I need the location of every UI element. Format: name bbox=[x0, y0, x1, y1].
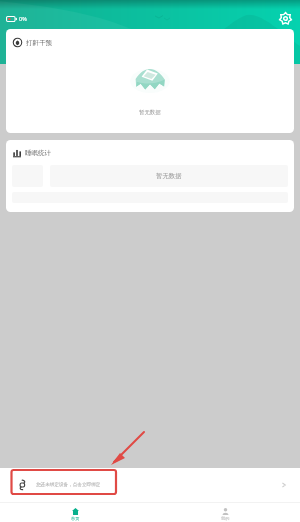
staticText: 暂无数据 bbox=[156, 172, 182, 180]
staticText: 睡眠统计 bbox=[25, 149, 51, 157]
button[interactable]: 您还未绑定设备，点击立即绑定 bbox=[0, 468, 300, 502]
staticText: 打鼾干预 bbox=[26, 39, 52, 47]
button[interactable]: 打鼾干预 bbox=[6, 29, 294, 133]
button[interactable]: Settings bbox=[277, 10, 293, 26]
button[interactable]: 睡眠统计 bbox=[6, 140, 294, 212]
button[interactable]: 我的 bbox=[150, 504, 300, 521]
staticText: 0% bbox=[19, 15, 27, 22]
staticText: 我的 bbox=[221, 516, 230, 521]
staticText: 首页 bbox=[71, 516, 80, 521]
staticText: 您还未绑定设备，点击立即绑定 bbox=[36, 482, 101, 488]
button[interactable]: 首页 bbox=[0, 504, 150, 521]
staticText: 暂无数据 bbox=[139, 109, 161, 116]
